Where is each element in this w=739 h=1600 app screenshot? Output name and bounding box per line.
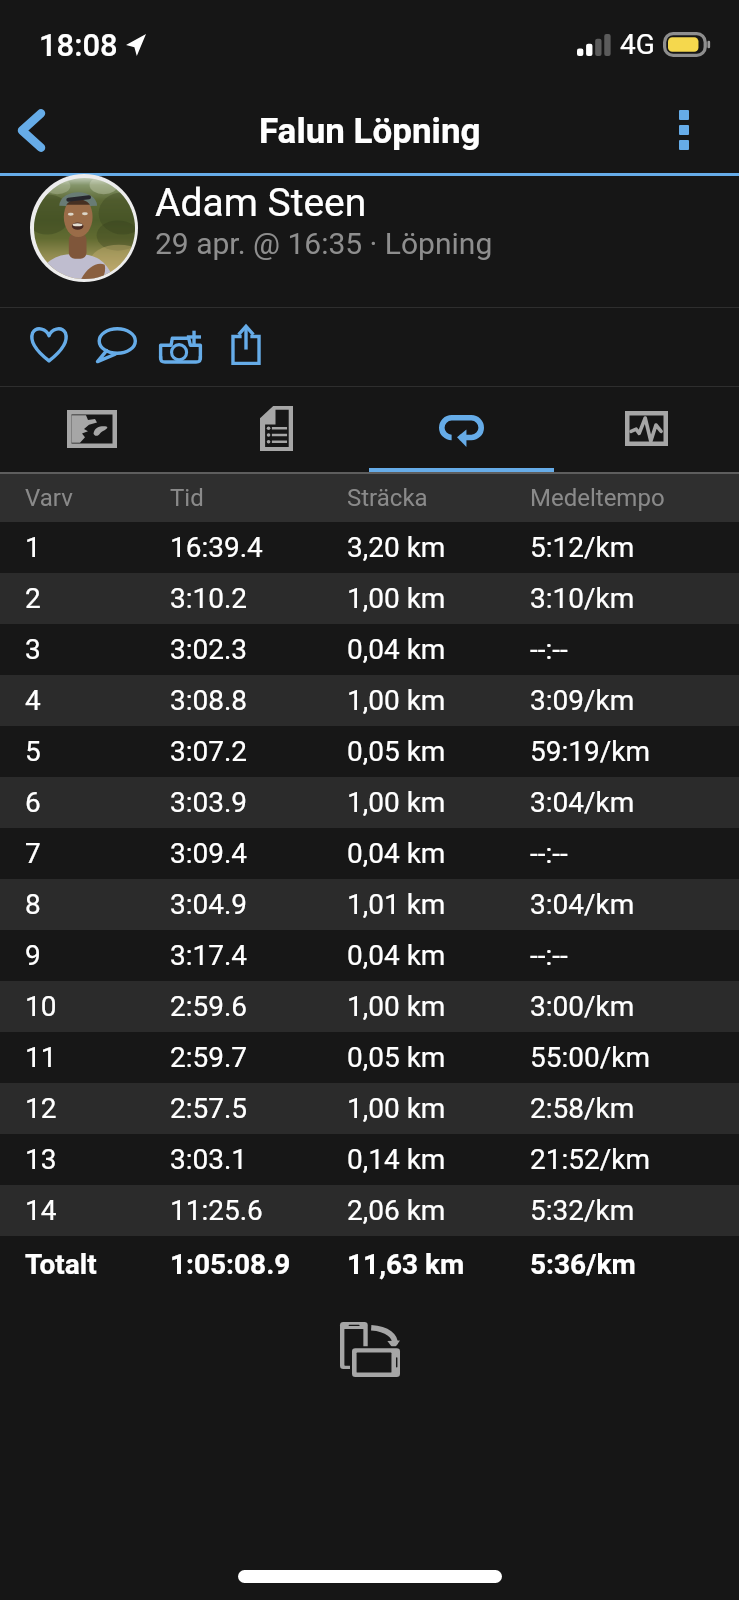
staticText: Varv <box>25 484 73 512</box>
staticText: Tid <box>170 484 204 512</box>
staticText: 5:36/km <box>530 1248 636 1281</box>
staticText: 2:59.6 <box>170 990 248 1023</box>
staticText: 16:39.4 <box>170 531 263 564</box>
button[interactable]: 9 <box>0 930 739 981</box>
staticText: 3:07.2 <box>170 735 248 768</box>
staticText: 12 <box>25 1092 57 1125</box>
staticText: 2 <box>25 582 41 615</box>
staticText: 14 <box>25 1194 57 1227</box>
staticText: 0,04 km <box>347 633 446 666</box>
staticText: 3:10.2 <box>170 582 248 615</box>
button[interactable]: Back <box>0 95 58 173</box>
button[interactable]: Analysis <box>554 387 739 472</box>
staticText: 1,00 km <box>347 786 446 819</box>
button[interactable]: Share <box>213 308 279 386</box>
button[interactable]: 6 <box>0 777 739 828</box>
staticText: Sträcka <box>347 484 428 512</box>
staticText: 3,20 km <box>347 531 446 564</box>
button[interactable]: 11 <box>0 1032 739 1083</box>
button[interactable]: More options <box>666 95 739 173</box>
staticText: 3:09/km <box>530 684 635 717</box>
staticText: 2:57.5 <box>170 1092 248 1125</box>
staticText: 3:04/km <box>530 786 635 819</box>
button[interactable]: Adam Steen <box>0 176 739 307</box>
button[interactable]: 14 <box>0 1185 739 1236</box>
staticText: Adam Steen <box>155 180 367 226</box>
staticText: 7 <box>25 837 41 870</box>
button[interactable]: 1 <box>0 522 739 573</box>
staticText: 3:09.4 <box>170 837 248 870</box>
staticText: Falun Löpning <box>259 111 481 152</box>
button[interactable]: Map <box>0 387 184 472</box>
staticText: 0,05 km <box>347 735 446 768</box>
staticText: 0,05 km <box>347 1041 446 1074</box>
staticText: 0,04 km <box>347 837 446 870</box>
staticText: 11 <box>25 1041 57 1074</box>
button[interactable]: 7 <box>0 828 739 879</box>
button[interactable]: Rotate device <box>0 1319 739 1379</box>
staticText: 3:00/km <box>530 990 635 1023</box>
staticText: 3:10/km <box>530 582 635 615</box>
staticText: 5:32/km <box>530 1194 635 1227</box>
staticText: 6 <box>25 786 41 819</box>
button[interactable]: 2 <box>0 573 739 624</box>
button[interactable]: 13 <box>0 1134 739 1185</box>
staticText: 3:17.4 <box>170 939 248 972</box>
staticText: 1,00 km <box>347 684 446 717</box>
staticText: 4G <box>620 28 655 61</box>
staticText: --:-- <box>530 939 568 972</box>
staticText: 3:03.1 <box>170 1143 248 1176</box>
button[interactable]: 10 <box>0 981 739 1032</box>
staticText: 10 <box>25 990 57 1023</box>
staticText: 2:59.7 <box>170 1041 248 1074</box>
staticText: Totalt <box>25 1248 97 1281</box>
staticText: 11,63 km <box>347 1248 465 1281</box>
button[interactable]: Add photo <box>147 308 213 386</box>
staticText: 3:04/km <box>530 888 635 921</box>
staticText: Medeltempo <box>530 484 665 512</box>
staticText: 1,00 km <box>347 1092 446 1125</box>
staticText: 1,00 km <box>347 582 446 615</box>
button[interactable]: Comment <box>83 308 149 386</box>
staticText: 8 <box>25 888 41 921</box>
staticText: 9 <box>25 939 41 972</box>
staticText: 1,01 km <box>347 888 446 921</box>
button[interactable]: Splits <box>184 387 369 472</box>
staticText: 3:03.9 <box>170 786 248 819</box>
button[interactable]: 8 <box>0 879 739 930</box>
button[interactable]: 4 <box>0 675 739 726</box>
staticText: 4 <box>25 684 41 717</box>
staticText: 18:08 <box>39 27 118 63</box>
staticText: 5 <box>25 735 41 768</box>
staticText: 1,00 km <box>347 990 446 1023</box>
staticText: 5:12/km <box>530 531 635 564</box>
staticText: 3 <box>25 633 41 666</box>
staticText: 21:52/km <box>530 1143 651 1176</box>
button[interactable]: 5 <box>0 726 739 777</box>
staticText: --:-- <box>530 633 568 666</box>
staticText: 3:04.9 <box>170 888 248 921</box>
staticText: 1:05:08.9 <box>170 1248 291 1281</box>
staticText: 2:58/km <box>530 1092 635 1125</box>
staticText: 59:19/km <box>530 735 651 768</box>
staticText: 3:08.8 <box>170 684 248 717</box>
button[interactable]: 12 <box>0 1083 739 1134</box>
staticText: 0,04 km <box>347 939 446 972</box>
staticText: 2,06 km <box>347 1194 446 1227</box>
staticText: 0,14 km <box>347 1143 446 1176</box>
staticText: 29 apr. @ 16:35 · Löpning <box>155 226 493 261</box>
staticText: 1 <box>25 531 41 564</box>
button[interactable]: Like <box>16 308 82 386</box>
staticText: 11:25.6 <box>170 1194 263 1227</box>
staticText: 3:02.3 <box>170 633 248 666</box>
staticText: --:-- <box>530 837 568 870</box>
staticText: 55:00/km <box>530 1041 651 1074</box>
staticText: 13 <box>25 1143 57 1176</box>
button[interactable]: Laps <box>369 387 554 472</box>
button[interactable]: 3 <box>0 624 739 675</box>
